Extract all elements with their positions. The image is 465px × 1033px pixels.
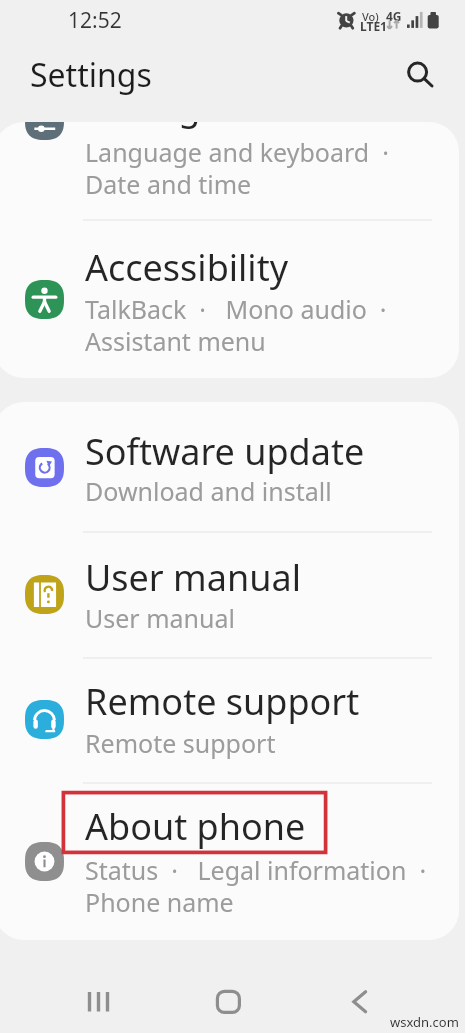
button[interactable]: General management <box>0 122 459 223</box>
button[interactable]: Accessibility <box>0 219 459 378</box>
button[interactable]: About phone <box>0 782 459 939</box>
staticText: Vo) <box>362 9 379 24</box>
staticText: About phone <box>85 802 306 851</box>
staticText: Remote support <box>85 677 360 726</box>
button[interactable]: Search <box>398 56 442 100</box>
staticText: Date and time <box>85 167 252 201</box>
staticText: Status · Legal information · <box>85 853 427 887</box>
staticText: Remote support <box>85 726 276 760</box>
staticText: General management <box>0 122 311 131</box>
staticText: wsxdn.com <box>390 1013 459 1031</box>
button[interactable]: Home <box>202 976 254 1028</box>
staticText: Assistant menu <box>85 324 266 358</box>
staticText: TalkBack · Mono audio · <box>85 292 387 326</box>
staticText: Settings <box>30 53 152 97</box>
staticText: User manual <box>85 601 235 635</box>
button[interactable]: Back <box>334 976 386 1028</box>
button[interactable]: Remote support <box>0 657 459 782</box>
staticText: Phone name <box>85 885 234 919</box>
button[interactable]: Software update <box>0 402 459 531</box>
staticText: 4G <box>386 8 402 24</box>
staticText: User manual <box>85 553 301 602</box>
staticText: Accessibility <box>85 243 289 292</box>
staticText: Language and keyboard · <box>85 135 389 169</box>
staticText: Download and install <box>85 474 332 508</box>
staticText: Software update <box>85 427 365 476</box>
staticText: LTE1 <box>360 18 387 34</box>
staticText: 12:52 <box>68 6 122 35</box>
button[interactable]: Recents <box>76 976 128 1028</box>
button[interactable]: User manual <box>0 531 459 657</box>
